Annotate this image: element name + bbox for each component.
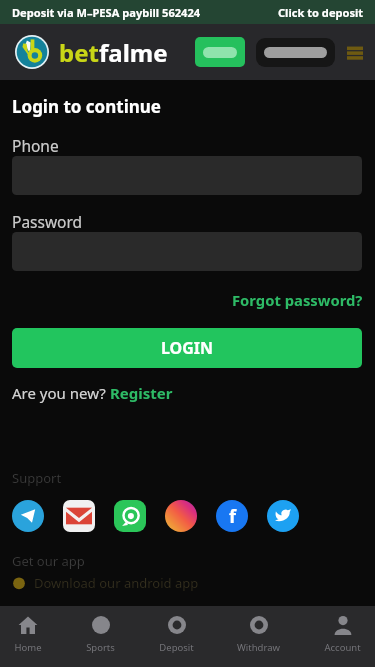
staticText: Login to continue (12, 95, 162, 118)
staticText: f (229, 504, 236, 529)
button[interactable]: Telegram (12, 500, 44, 532)
staticText: LOGIN (161, 337, 214, 359)
staticText: falme (99, 36, 168, 69)
button[interactable]: Deposit via M–PESA paybill 562424 (0, 0, 375, 24)
staticText: Download our android app (34, 574, 199, 592)
button[interactable]: WhatsApp (114, 500, 146, 532)
staticText: bet (59, 36, 99, 69)
button[interactable]: LOGIN (12, 328, 362, 368)
staticText: Withdraw (237, 641, 280, 654)
button[interactable] (256, 38, 335, 67)
button[interactable] (195, 37, 245, 67)
staticText: Support (12, 469, 62, 487)
button[interactable]: Download our android app (12, 574, 199, 592)
button[interactable]: Email (63, 500, 95, 532)
staticText: Are you new? (12, 383, 110, 403)
staticText: Account (324, 641, 361, 654)
staticText: Phone (12, 135, 59, 156)
staticText: Sports (86, 641, 115, 654)
staticText: Password (12, 211, 83, 232)
staticText: Click to deposit (278, 5, 364, 20)
button[interactable]: Menu (347, 44, 363, 60)
button[interactable]: Forgot password? (232, 290, 363, 310)
button[interactable]: Register (110, 383, 173, 403)
button[interactable]: Facebook (216, 500, 248, 532)
button[interactable]: Deposit (157, 615, 196, 654)
button[interactable]: Withdraw (235, 615, 282, 654)
staticText: Get our app (12, 552, 85, 570)
button[interactable]: Sports (84, 615, 117, 654)
staticText: Deposit via M–PESA paybill 562424 (12, 5, 201, 20)
button[interactable]: Twitter (267, 500, 299, 532)
button[interactable]: Instagram (165, 500, 197, 532)
button[interactable]: Account (322, 615, 363, 654)
staticText: Deposit (159, 641, 194, 654)
staticText: Home (14, 641, 42, 654)
button[interactable]: Home (12, 615, 44, 654)
